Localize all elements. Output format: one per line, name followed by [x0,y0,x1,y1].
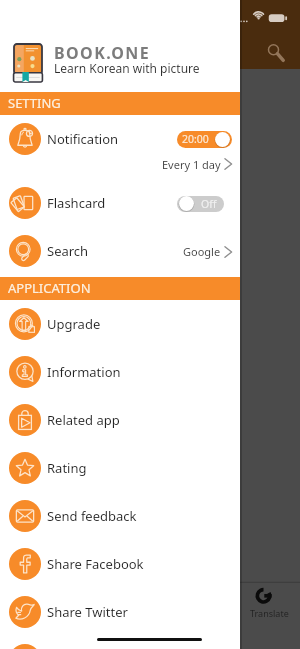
staticText: Every 1 day [162,157,221,172]
button[interactable]: Share Twitter [0,588,240,636]
button[interactable]: Flashcard [0,179,240,227]
staticText: Share Twitter [47,603,128,621]
button[interactable]: Upgrade [0,300,240,348]
button[interactable]: Send feedback [0,492,240,540]
staticText: Information [47,363,121,381]
staticText: Flashcard [47,194,106,212]
staticText: Search [47,242,89,260]
button[interactable]: Share Facebook [0,540,240,588]
staticText: Related app [47,411,120,429]
staticText: Translate [250,607,289,619]
button[interactable]: Rating [0,444,240,492]
staticText: Rating [47,459,87,477]
button[interactable]: Notification [0,115,240,179]
staticText: Upgrade [47,315,101,333]
button[interactable]: Notification time 20:00, on [177,131,232,148]
button[interactable]: Information [0,348,240,396]
staticText: Share Facebook [47,555,144,573]
button[interactable]: Related app [0,396,240,444]
staticText: 20:00 [182,132,209,146]
button[interactable]: Flashcard off [177,195,232,212]
button[interactable]: Google Translate [240,582,300,628]
staticText: Send feedback [47,507,137,525]
staticText: Notification [47,130,119,148]
button[interactable]: Share [0,636,240,649]
staticText: Off [201,197,217,211]
staticText: Google [183,244,221,259]
staticText: Learn Korean with picture [54,60,200,76]
button[interactable]: Search [0,227,240,275]
staticText: APPLICATION [8,279,91,297]
staticText: BOOK.ONE [54,42,151,64]
staticText: SETTING [8,94,61,112]
